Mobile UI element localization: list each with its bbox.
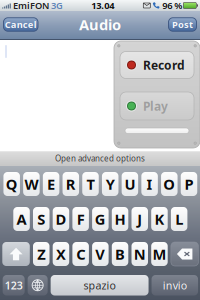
staticText: T (86, 174, 94, 194)
staticText: I (147, 174, 153, 194)
staticText: D (55, 209, 66, 229)
staticText: C (76, 244, 85, 264)
button[interactable]: D (53, 207, 69, 231)
staticText: spazio (84, 278, 116, 292)
button[interactable]: Y (102, 172, 118, 196)
staticText: W (24, 174, 38, 194)
staticText: invio (163, 278, 187, 292)
staticText: Y (106, 174, 115, 194)
button[interactable]: C (72, 242, 89, 266)
button[interactable]: S (33, 207, 49, 231)
staticText: O (163, 174, 175, 194)
button[interactable]: J (131, 207, 148, 231)
staticText: U (124, 174, 135, 194)
button[interactable]: W (23, 172, 40, 196)
staticText: Play (143, 98, 168, 114)
button[interactable]: Post (168, 18, 196, 31)
button[interactable]: G (92, 207, 109, 231)
staticText: N (134, 244, 146, 264)
staticText: P (184, 174, 193, 194)
staticText: R (66, 174, 76, 194)
button[interactable]: spazio (51, 275, 148, 295)
button[interactable]: F (72, 207, 89, 231)
button[interactable]: N (131, 242, 148, 266)
staticText: E (47, 174, 55, 194)
button[interactable] (2, 242, 30, 266)
staticText: 13.04 (91, 0, 114, 12)
button[interactable]: 123 (3, 275, 25, 295)
button[interactable]: T (82, 172, 99, 196)
button[interactable]: Play (120, 92, 194, 120)
button[interactable]: Delete (171, 242, 198, 266)
button[interactable]: O (161, 172, 177, 196)
button[interactable]: R (62, 172, 79, 196)
button[interactable]: Open advanced options (0, 151, 200, 166)
staticText: Open advanced options (55, 153, 145, 164)
staticText: EmiFON (13, 0, 49, 12)
staticText: L (175, 209, 183, 229)
button[interactable]: B (112, 242, 128, 266)
staticText: M (152, 244, 166, 264)
button[interactable]: V (92, 242, 109, 266)
staticText: J (137, 209, 142, 229)
button[interactable]: X (53, 242, 69, 266)
staticText: A (17, 209, 27, 229)
staticText: Cancel (5, 18, 37, 31)
staticText: B (115, 244, 125, 264)
button[interactable]: Q (3, 172, 20, 196)
staticText: G (95, 209, 106, 229)
button[interactable]: K (151, 207, 168, 231)
button[interactable]: A (13, 207, 30, 231)
staticText: Record (143, 57, 185, 73)
staticText: F (77, 209, 85, 229)
staticText: 3G (49, 0, 63, 12)
staticText: 96 % (160, 0, 182, 12)
staticText: H (114, 209, 125, 229)
staticText: Audio (79, 15, 121, 34)
button[interactable]: Switch keyboard (28, 275, 48, 295)
staticText: K (154, 209, 164, 229)
staticText: V (95, 244, 105, 264)
staticText: Q (6, 174, 18, 194)
staticText: 123 (5, 278, 23, 292)
button[interactable]: M (151, 242, 168, 266)
button[interactable]: invio (152, 275, 198, 295)
button[interactable]: H (112, 207, 128, 231)
button[interactable]: L (171, 207, 187, 231)
staticText: X (56, 244, 66, 264)
button[interactable]: P (181, 172, 197, 196)
button[interactable]: Cancel (3, 18, 38, 31)
button[interactable]: E (43, 172, 59, 196)
staticText: Post (172, 18, 193, 31)
button[interactable]: Record (120, 51, 194, 78)
staticText: Z (37, 244, 45, 264)
staticText: S (37, 209, 45, 229)
button[interactable]: Z (33, 242, 49, 266)
button[interactable]: U (122, 172, 138, 196)
button[interactable]: I (141, 172, 158, 196)
